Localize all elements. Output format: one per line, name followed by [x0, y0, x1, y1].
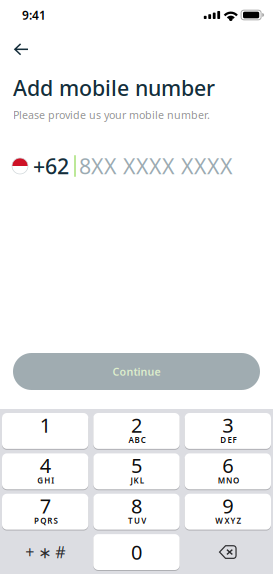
- staticText: DEF: [220, 435, 236, 445]
- button[interactable]: Symbols: [2, 534, 88, 570]
- staticText: WXYZ: [215, 515, 242, 526]
- staticText: Please provide us your mobile number.: [13, 108, 210, 122]
- staticText: MNO: [218, 475, 239, 486]
- button[interactable]: 7: [2, 494, 88, 530]
- staticText: 6: [222, 452, 233, 479]
- button[interactable]: 8: [93, 494, 180, 530]
- button[interactable]: 2: [93, 413, 180, 449]
- staticText: 0: [131, 539, 142, 565]
- button[interactable]: Delete: [185, 534, 271, 570]
- button[interactable]: 1: [2, 413, 88, 449]
- staticText: 7: [40, 492, 51, 519]
- staticText: 8XX XXXX XXXX: [79, 152, 233, 180]
- staticText: 3: [222, 412, 233, 438]
- button[interactable]: 3: [185, 413, 271, 449]
- staticText: GHI: [37, 475, 54, 486]
- staticText: PQRS: [34, 515, 57, 526]
- button[interactable]: Back: [0, 35, 44, 63]
- staticText: Continue: [112, 364, 160, 379]
- staticText: TUV: [128, 515, 146, 526]
- staticText: 5: [131, 452, 142, 479]
- staticText: Add mobile number: [13, 73, 215, 102]
- button[interactable]: 9: [185, 494, 271, 530]
- staticText: 8: [131, 492, 142, 519]
- staticText: ABC: [128, 435, 146, 445]
- button[interactable]: 4: [2, 453, 88, 489]
- button[interactable]: 6: [185, 453, 271, 489]
- staticText: +62: [33, 152, 69, 180]
- button[interactable]: 5: [93, 453, 180, 489]
- button[interactable]: 0: [93, 534, 180, 570]
- staticText: 2: [131, 412, 142, 438]
- staticText: + ∗ #: [25, 541, 65, 563]
- staticText: 9: [222, 492, 233, 519]
- staticText: 1: [40, 412, 51, 438]
- staticText: 9:41: [22, 7, 46, 23]
- staticText: 4: [40, 452, 51, 479]
- button[interactable]: Continue: [13, 353, 260, 390]
- staticText: JKL: [130, 475, 144, 486]
